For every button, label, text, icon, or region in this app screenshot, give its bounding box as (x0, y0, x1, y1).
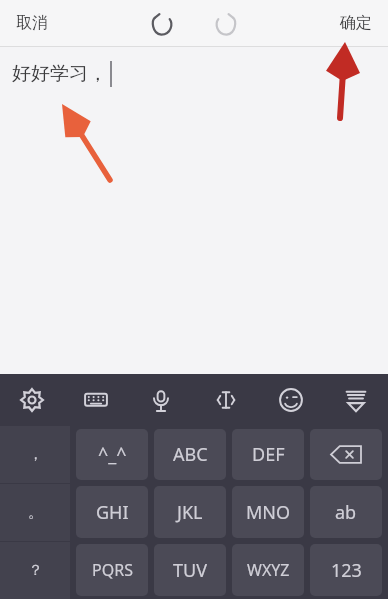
button[interactable]: WXYZ (232, 544, 304, 596)
staticText: ab (335, 500, 357, 525)
button[interactable]: Hide keyboard (323, 374, 388, 426)
button[interactable]: Voice input (128, 374, 193, 426)
staticText: TUV (173, 558, 207, 583)
button[interactable]: MNO (232, 486, 304, 538)
staticText: ^_^ (98, 442, 127, 467)
button[interactable]: 123 (310, 544, 382, 596)
staticText: ？ (28, 561, 43, 580)
button[interactable]: ？ (0, 542, 70, 599)
button[interactable]: 。 (0, 484, 70, 541)
button[interactable]: Delete (310, 429, 382, 480)
button[interactable]: TUV (154, 544, 226, 596)
button[interactable]: Redo (207, 3, 247, 43)
button[interactable]: Emoji (258, 374, 323, 426)
button[interactable]: ， (0, 426, 70, 483)
staticText: 取消 (16, 13, 48, 33)
staticText: DEF (252, 442, 285, 467)
staticText: 123 (331, 558, 362, 583)
button[interactable]: Move cursor (193, 374, 258, 426)
staticText: 好好学习， (12, 62, 107, 86)
staticText: PQRS (92, 559, 133, 581)
staticText: ， (28, 445, 43, 464)
button[interactable]: 取消 (0, 3, 64, 43)
staticText: 确定 (340, 13, 372, 33)
button[interactable]: GHI (76, 486, 148, 538)
button[interactable]: 确定 (324, 3, 388, 43)
button[interactable]: ab (310, 486, 382, 538)
button[interactable]: Keyboard layout (64, 374, 128, 426)
button[interactable]: Settings (0, 374, 64, 426)
button[interactable]: ABC (154, 429, 226, 480)
button[interactable]: ^_^ (76, 429, 148, 480)
staticText: MNO (246, 500, 291, 525)
staticText: WXYZ (247, 559, 290, 581)
staticText: GHI (96, 500, 129, 525)
button[interactable]: Undo (141, 3, 181, 43)
button[interactable]: DEF (232, 429, 304, 480)
staticText: JKL (177, 500, 203, 525)
button[interactable]: PQRS (76, 544, 148, 596)
button[interactable]: JKL (154, 486, 226, 538)
staticText: ABC (173, 442, 208, 467)
staticText: 。 (28, 503, 43, 522)
